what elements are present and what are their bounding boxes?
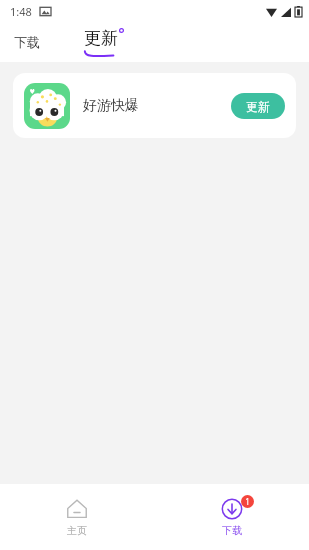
button[interactable]: 更新 xyxy=(80,26,130,59)
button[interactable]: 好游快爆 xyxy=(13,73,296,138)
button[interactable]: 更新 xyxy=(231,93,285,119)
button[interactable]: 主页 xyxy=(0,484,154,550)
staticText: 更新 xyxy=(246,99,270,114)
staticText: 下载 xyxy=(222,524,242,537)
button[interactable]: 下载 xyxy=(8,30,46,54)
staticText: 更新 xyxy=(84,28,118,49)
staticText: 1 xyxy=(245,496,250,507)
staticText: 主页 xyxy=(67,524,87,537)
staticText: 好游快爆 xyxy=(83,97,231,115)
button[interactable]: 1 xyxy=(154,484,309,550)
staticText: 下载 xyxy=(14,34,40,50)
staticText: 1:48 xyxy=(10,4,32,19)
